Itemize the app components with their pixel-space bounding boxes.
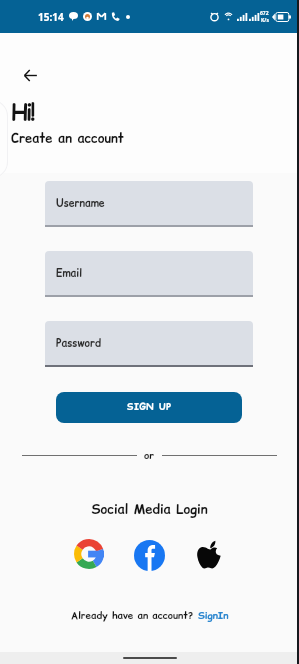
staticText: Password: [56, 336, 102, 351]
button[interactable]: Sign in with Facebook: [134, 540, 165, 571]
button[interactable]: Sign in with Apple: [195, 539, 226, 570]
staticText: Username: [56, 196, 105, 211]
staticText: Social Media Login: [0, 500, 299, 518]
staticText: Already have an account?: [71, 609, 198, 623]
button[interactable]: Email: [45, 251, 253, 295]
button[interactable]: SignIn: [198, 609, 229, 623]
staticText: K/s: [261, 17, 269, 24]
button[interactable]: Password: [45, 321, 253, 365]
staticText: Create an account: [11, 129, 124, 147]
button[interactable]: Username: [45, 181, 253, 225]
button[interactable]: Sign in with Google: [74, 539, 104, 569]
staticText: Hi!: [11, 97, 34, 128]
button[interactable]: SIGN UP: [56, 392, 242, 423]
staticText: SignIn: [198, 609, 229, 623]
button[interactable]: Back: [18, 63, 42, 87]
staticText: Email: [56, 266, 83, 281]
staticText: SIGN UP: [127, 401, 172, 414]
staticText: 15:14: [38, 10, 64, 24]
staticText: 672: [260, 10, 269, 17]
staticText: or: [144, 448, 155, 462]
